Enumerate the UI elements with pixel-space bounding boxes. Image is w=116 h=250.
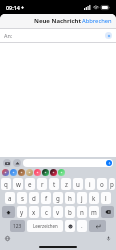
button[interactable]: r bbox=[37, 178, 47, 190]
button[interactable]: v bbox=[53, 206, 63, 218]
button[interactable]: Kontakt hinzufügen bbox=[105, 32, 112, 39]
staticText: y bbox=[20, 208, 24, 216]
button[interactable]: Kamera bbox=[3, 159, 11, 167]
button[interactable]: An: bbox=[0, 29, 116, 42]
staticText: m bbox=[91, 208, 97, 216]
staticText: t bbox=[53, 180, 56, 188]
button[interactable]: t bbox=[49, 178, 59, 190]
button[interactable]: Leerzeichen bbox=[27, 220, 63, 232]
button[interactable]: q bbox=[1, 178, 11, 190]
button[interactable]: App bbox=[34, 169, 41, 176]
staticText: 123 bbox=[13, 223, 22, 230]
staticText: p bbox=[110, 180, 114, 188]
button[interactable]: u bbox=[73, 178, 83, 190]
button[interactable]: o bbox=[97, 178, 107, 190]
staticText: f bbox=[45, 194, 48, 202]
staticText: An: bbox=[4, 32, 13, 39]
staticText: k bbox=[92, 194, 96, 202]
button[interactable]: x bbox=[29, 206, 39, 218]
button[interactable]: m bbox=[89, 206, 99, 218]
button[interactable]: Senden bbox=[106, 160, 112, 166]
staticText: b bbox=[68, 208, 72, 216]
staticText: Leerzeichen bbox=[33, 223, 58, 229]
button[interactable]: App bbox=[42, 169, 49, 176]
button[interactable]: a bbox=[5, 192, 15, 204]
staticText: o bbox=[100, 180, 104, 188]
button[interactable]: App bbox=[2, 169, 9, 176]
button[interactable]: d bbox=[29, 192, 39, 204]
button[interactable]: Umschalt bbox=[2, 206, 15, 218]
staticText: j bbox=[81, 194, 83, 202]
staticText: w bbox=[16, 180, 21, 188]
button[interactable]: App bbox=[26, 169, 33, 176]
button[interactable]: 123 bbox=[10, 220, 25, 232]
button[interactable]: k bbox=[89, 192, 99, 204]
button[interactable]: f bbox=[41, 192, 51, 204]
button[interactable]: p bbox=[109, 178, 115, 190]
button[interactable]: Abbrechen bbox=[82, 14, 112, 28]
staticText: n bbox=[80, 208, 84, 216]
button[interactable]: h bbox=[65, 192, 75, 204]
button[interactable]: i bbox=[85, 178, 95, 190]
button[interactable]: z bbox=[61, 178, 71, 190]
button[interactable]: c bbox=[41, 206, 51, 218]
staticText: d bbox=[32, 194, 36, 202]
button[interactable]: e bbox=[25, 178, 35, 190]
button[interactable]: w bbox=[13, 178, 23, 190]
button[interactable]: Apps bbox=[13, 159, 21, 167]
button[interactable]: Löschen bbox=[101, 206, 114, 218]
button[interactable]: App bbox=[18, 169, 25, 176]
button[interactable]: b bbox=[65, 206, 75, 218]
button[interactable]: l bbox=[101, 192, 111, 204]
button[interactable]: App bbox=[10, 169, 17, 176]
button[interactable]: Senden bbox=[23, 159, 113, 167]
staticText: Neue Nachricht bbox=[34, 17, 82, 25]
staticText: c bbox=[45, 208, 48, 216]
staticText: v bbox=[56, 208, 60, 216]
staticText: q bbox=[4, 180, 8, 188]
button[interactable]: y bbox=[17, 206, 27, 218]
button[interactable]: Sprache wechseln bbox=[3, 234, 12, 243]
staticText: 09:14 bbox=[6, 4, 20, 11]
button[interactable]: Diktieren bbox=[104, 234, 113, 243]
staticText: l bbox=[105, 194, 107, 202]
staticText: a bbox=[8, 194, 12, 202]
staticText: Abbrechen bbox=[82, 17, 112, 25]
staticText: h bbox=[68, 194, 72, 202]
button[interactable]: App bbox=[50, 169, 57, 176]
staticText: u bbox=[76, 180, 80, 188]
button[interactable]: s bbox=[17, 192, 27, 204]
button[interactable]: j bbox=[77, 192, 87, 204]
staticText: i bbox=[89, 180, 91, 188]
staticText: s bbox=[21, 194, 24, 202]
button[interactable]: g bbox=[53, 192, 63, 204]
staticText: e bbox=[28, 180, 32, 188]
button[interactable]: n bbox=[77, 206, 87, 218]
button[interactable]: Eingabe bbox=[89, 220, 106, 232]
button[interactable]: Emoji bbox=[65, 220, 75, 232]
staticText: g bbox=[56, 194, 60, 202]
staticText: z bbox=[65, 180, 68, 188]
staticText: r bbox=[41, 180, 44, 188]
button[interactable]: . bbox=[77, 220, 87, 232]
staticText: . bbox=[81, 222, 83, 230]
button[interactable]: App bbox=[58, 169, 65, 176]
staticText: x bbox=[32, 208, 36, 216]
